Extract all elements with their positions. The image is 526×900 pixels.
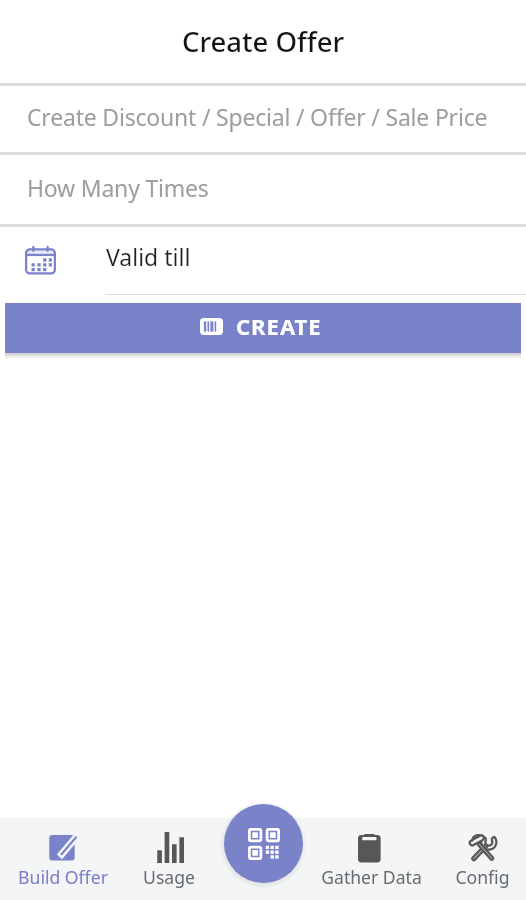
staticText: Create Discount / Special / Offer / Sale…: [27, 101, 488, 132]
button[interactable]: Create Offer: [0, 0, 526, 83]
button[interactable]: Build Offer: [9, 818, 117, 900]
staticText: Build Offer: [18, 865, 108, 889]
button[interactable]: Gather Data: [317, 818, 425, 900]
staticText: CREATE: [236, 311, 322, 341]
button[interactable]: Create Discount / Special / Offer / Sale…: [0, 86, 526, 152]
button[interactable]: Config: [428, 818, 526, 900]
button[interactable]: Usage: [115, 818, 223, 900]
staticText: Config: [455, 865, 510, 889]
staticText: How Many Times: [27, 172, 209, 203]
staticText: Valid till: [106, 241, 191, 272]
button[interactable]: Valid till: [0, 226, 526, 303]
button[interactable]: CREATE: [5, 303, 521, 353]
staticText: Gather Data: [321, 865, 422, 889]
staticText: Create Offer: [182, 23, 345, 60]
button[interactable]: How Many Times: [0, 155, 526, 224]
button[interactable]: Scan QR code: [224, 804, 303, 883]
staticText: Usage: [143, 865, 195, 889]
